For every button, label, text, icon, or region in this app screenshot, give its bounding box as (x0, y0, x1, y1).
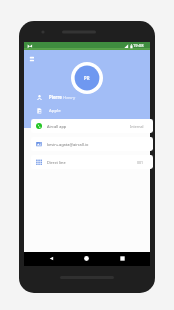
button[interactable]: Home (82, 254, 91, 263)
staticText: PR (84, 75, 90, 81)
staticText: 19:08 (133, 43, 144, 49)
staticText: Pierre (49, 94, 62, 100)
staticText: Aircall app (47, 124, 67, 129)
staticText: Internal (130, 124, 144, 129)
button[interactable]: Open navigation menu (28, 55, 36, 63)
button[interactable]: Recent apps (118, 254, 127, 263)
staticText: Henry (63, 94, 76, 100)
staticText: Direct line (47, 160, 66, 165)
button[interactable]: Direct line (31, 155, 153, 169)
staticText: kevin+agata@aircall.io (47, 142, 89, 147)
button[interactable]: Aircall app (31, 119, 153, 133)
staticText: Apple (49, 107, 61, 113)
button[interactable]: Back (47, 254, 56, 263)
button[interactable]: kevin+agata@aircall.io (31, 137, 153, 151)
staticText: 001 (137, 160, 144, 165)
